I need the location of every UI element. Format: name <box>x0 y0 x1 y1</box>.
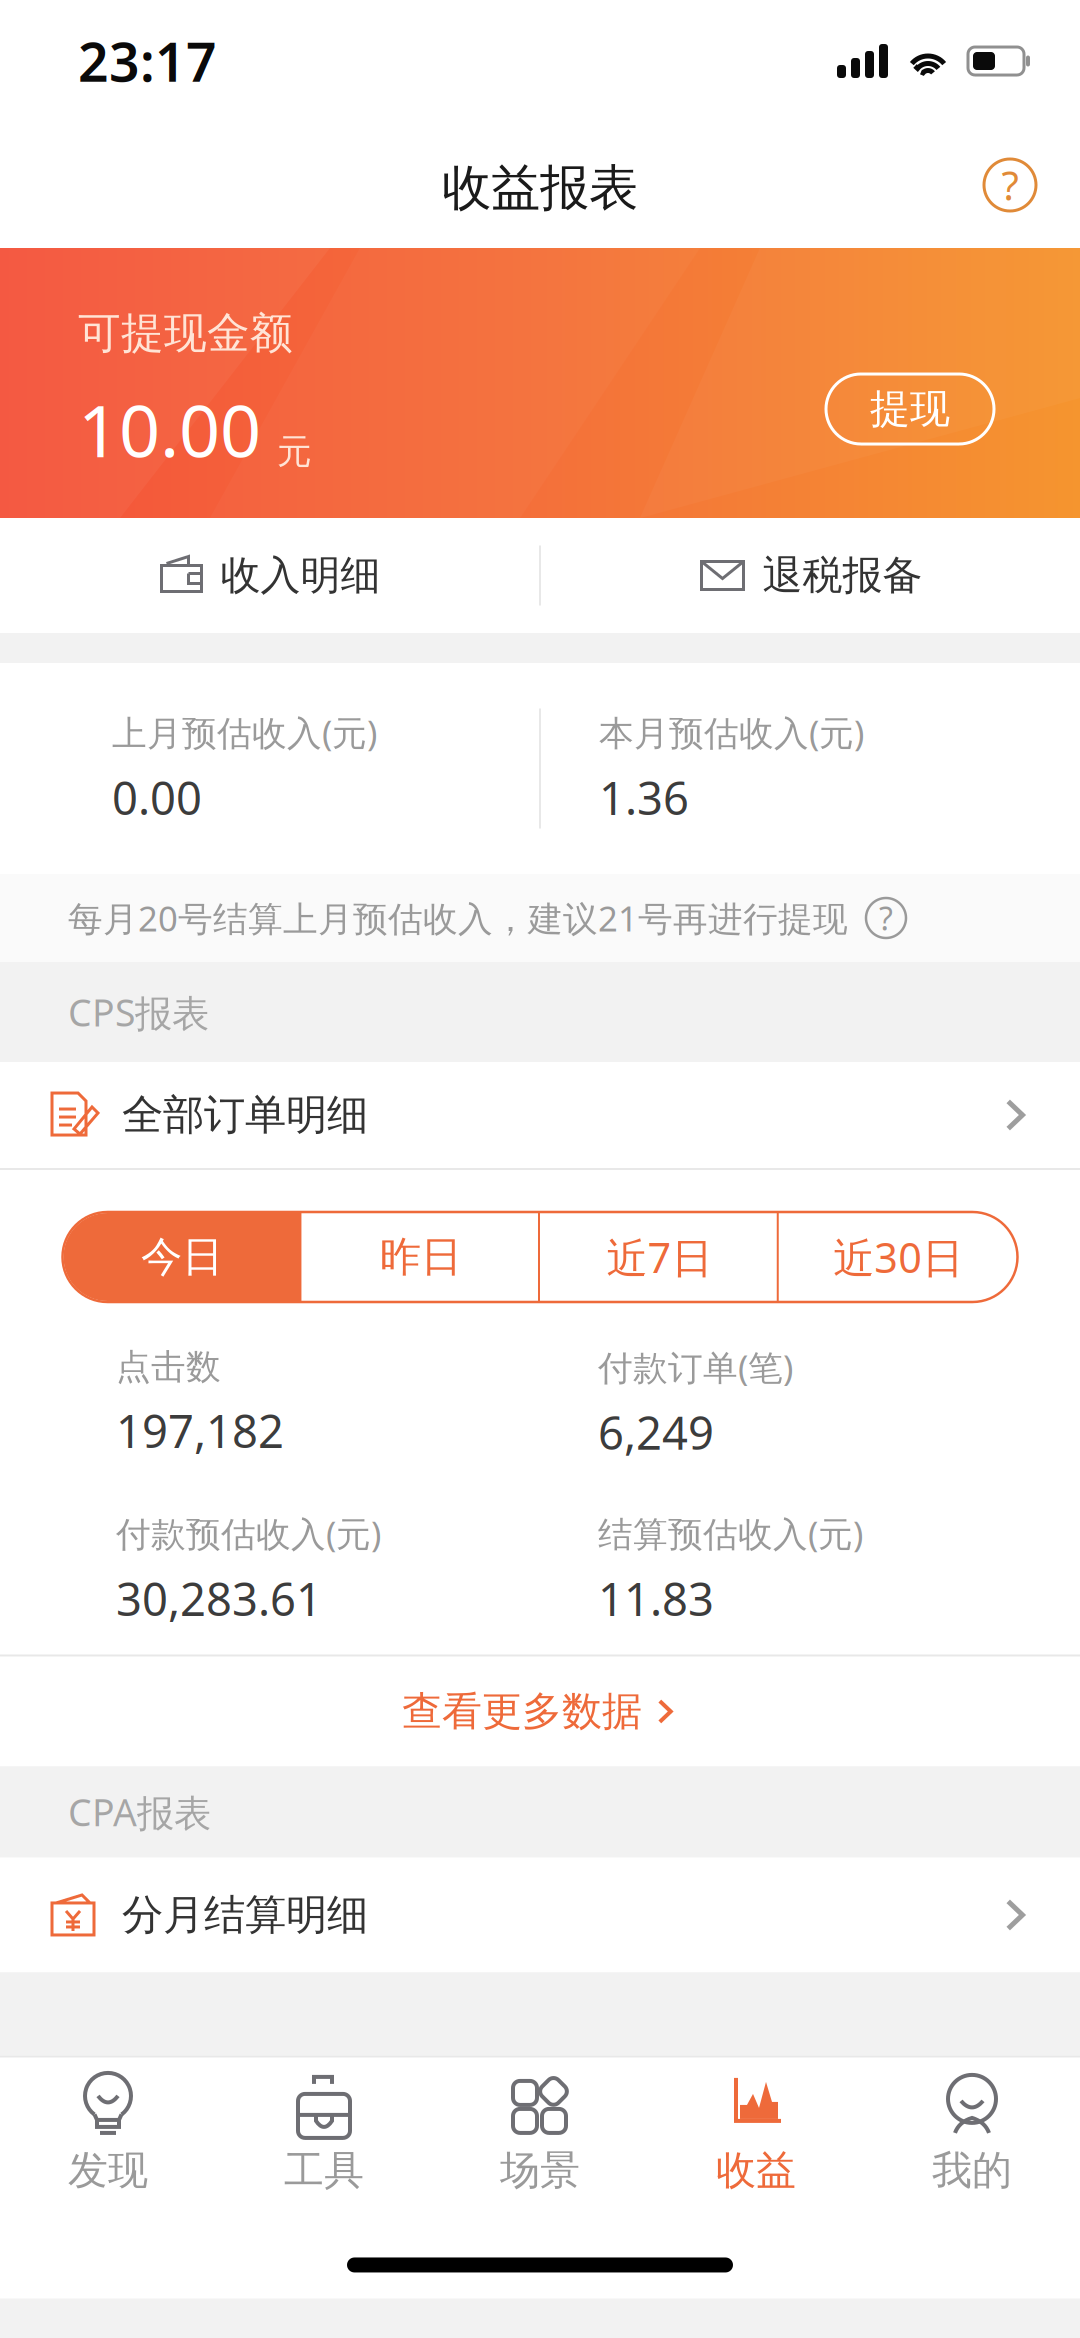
staticText: 工具 <box>284 2146 364 2195</box>
staticText: 上月预估收入(元) <box>112 709 377 755</box>
staticText: 结算预估收入(元) <box>598 1510 863 1556</box>
staticText: 今日 <box>141 1232 223 1282</box>
staticText: CPS报表 <box>68 987 209 1037</box>
staticText: 退税报备 <box>762 551 922 600</box>
staticText: 收入明细 <box>220 551 380 600</box>
button[interactable]: 收益 <box>648 2060 864 2205</box>
button[interactable]: 近7日 <box>540 1212 779 1302</box>
staticText: 分月结算明细 <box>122 1890 368 1940</box>
staticText: 查看更多数据 <box>402 1687 642 1736</box>
button[interactable]: 发现 <box>0 2060 216 2205</box>
staticText: 近30日 <box>833 1230 963 1284</box>
button[interactable]: 帮助 <box>984 159 1036 211</box>
staticText: 昨日 <box>380 1232 462 1282</box>
button[interactable]: 工具 <box>216 2060 432 2205</box>
staticText: CPA报表 <box>68 1787 211 1837</box>
staticText: ? <box>1001 158 1018 211</box>
button[interactable]: 我的 <box>864 2060 1080 2205</box>
button[interactable]: 说明 <box>866 898 906 938</box>
staticText: 收益 <box>716 2146 796 2195</box>
staticText: 收益报表 <box>442 158 638 218</box>
button[interactable]: 昨日 <box>301 1212 540 1302</box>
button[interactable]: 今日 <box>62 1212 301 1302</box>
staticText: 元 <box>277 430 312 473</box>
staticText: 近7日 <box>606 1230 712 1284</box>
staticText: 付款预估收入(元) <box>116 1510 381 1556</box>
button[interactable]: 提现 <box>826 374 994 444</box>
staticText: 0.00 <box>112 767 202 828</box>
staticText: 23:17 <box>78 26 217 96</box>
staticText: 1.36 <box>599 767 689 828</box>
button[interactable]: 场景 <box>432 2060 648 2205</box>
button[interactable]: 退税报备 <box>541 518 1080 633</box>
staticText: 场景 <box>500 2146 580 2195</box>
staticText: 发现 <box>68 2146 148 2195</box>
button[interactable]: 收入明细 <box>0 518 539 633</box>
staticText: 付款订单(笔) <box>598 1344 793 1390</box>
staticText: 提现 <box>870 384 950 433</box>
staticText: ? <box>879 897 893 939</box>
staticText: 本月预估收入(元) <box>599 709 864 755</box>
button[interactable]: 近30日 <box>779 1212 1018 1302</box>
staticText: 每月20号结算上月预估收入，建议21号再进行提现 <box>68 895 848 941</box>
button[interactable]: 查看更多数据 <box>0 1656 1080 1766</box>
staticText: 197,182 <box>116 1400 284 1460</box>
staticText: 6,249 <box>598 1402 714 1462</box>
staticText: 30,283.61 <box>116 1568 322 1628</box>
button[interactable]: 全部订单明细 <box>0 1062 1080 1168</box>
staticText: 10.00 <box>78 381 261 477</box>
staticText: 可提现金额 <box>78 307 293 359</box>
staticText: 全部订单明细 <box>122 1090 368 1140</box>
button[interactable]: 分月结算明细 <box>0 1857 1080 1972</box>
staticText: 我的 <box>932 2146 1012 2195</box>
staticText: 点击数 <box>116 1346 221 1388</box>
staticText: 11.83 <box>598 1568 714 1628</box>
